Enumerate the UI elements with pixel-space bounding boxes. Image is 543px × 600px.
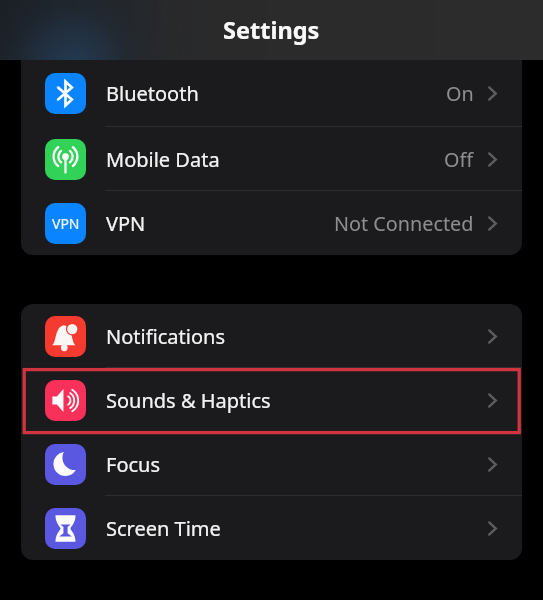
staticText: Notifications	[106, 323, 225, 350]
staticText: Sounds & Haptics	[106, 387, 271, 414]
other: Notifications	[45, 316, 86, 357]
other: Sounds and Haptics	[45, 380, 86, 421]
staticText: Bluetooth	[106, 80, 199, 107]
staticText: Mobile Data	[106, 146, 220, 173]
other: Focus	[45, 444, 86, 485]
button[interactable]: Screen Time	[21, 496, 522, 560]
other: Mobile Data	[45, 139, 86, 180]
button[interactable]: Mobile Data	[21, 127, 522, 191]
button[interactable]: Sounds and Haptics	[21, 368, 522, 432]
staticText: Off	[444, 146, 474, 173]
staticText: On	[446, 80, 474, 107]
staticText: Screen Time	[106, 515, 221, 542]
staticText: VPN	[52, 214, 80, 233]
staticText: Focus	[106, 451, 161, 478]
other: Screen Time	[45, 508, 86, 549]
other: Bluetooth	[45, 73, 86, 114]
staticText: Settings	[223, 14, 320, 46]
button[interactable]: Bluetooth	[21, 60, 522, 127]
button[interactable]: Notifications	[21, 304, 522, 368]
staticText: Not Connected	[334, 210, 474, 237]
other: VPN	[45, 203, 86, 244]
staticText: VPN	[106, 210, 146, 237]
button[interactable]: VPN	[21, 191, 522, 255]
button[interactable]: Focus	[21, 432, 522, 496]
